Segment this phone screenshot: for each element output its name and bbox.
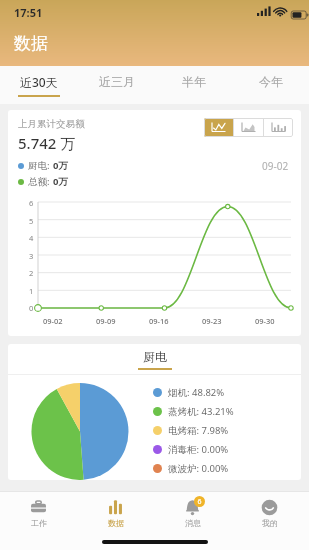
button[interactable]: 数据 xyxy=(77,492,154,534)
staticText: 消毒柜: 0.00% xyxy=(168,443,229,456)
staticText: 电烤箱: 7.98% xyxy=(168,424,229,437)
button[interactable]: 近30天 xyxy=(0,66,78,104)
staticText: 17:51 xyxy=(14,5,43,20)
staticText: 6 xyxy=(29,198,34,208)
staticText: 5.742 万 xyxy=(18,133,76,153)
staticText: 烟机: 48.82% xyxy=(168,386,225,399)
staticText: 5 xyxy=(29,216,34,226)
staticText: 0万 xyxy=(53,175,68,188)
staticText: 4 xyxy=(29,233,34,243)
staticText: 09-23 xyxy=(202,316,222,326)
staticText: 2 xyxy=(29,268,34,278)
staticText: 总额: xyxy=(28,175,50,188)
button[interactable]: 我的 xyxy=(231,492,308,534)
staticText: 今年 xyxy=(259,74,283,89)
staticText: 近三月 xyxy=(99,74,135,89)
button[interactable]: 6 xyxy=(154,492,231,534)
staticText: 0 xyxy=(29,303,34,313)
button[interactable]: 半年 xyxy=(155,66,232,104)
button[interactable]: Line chart xyxy=(204,118,233,137)
staticText: 3 xyxy=(29,251,34,261)
staticText: 厨电: xyxy=(28,159,50,172)
staticText: 厨电 xyxy=(143,349,167,364)
staticText: 09-02 xyxy=(262,159,289,173)
staticText: 消息 xyxy=(185,518,201,528)
staticText: 工作 xyxy=(31,518,47,528)
staticText: 09-16 xyxy=(149,316,169,326)
staticText: 蒸烤机: 43.21% xyxy=(168,405,234,418)
button[interactable]: Chart type xyxy=(264,118,293,137)
staticText: 我的 xyxy=(262,518,278,528)
staticText: 0万 xyxy=(53,159,68,172)
staticText: 微波炉: 0.00% xyxy=(168,462,229,475)
button[interactable]: 近三月 xyxy=(78,66,155,104)
staticText: 1 xyxy=(29,286,34,296)
button[interactable]: Chart type xyxy=(234,118,263,137)
staticText: 近30天 xyxy=(20,74,58,90)
staticText: 半年 xyxy=(182,74,206,89)
staticText: 6 xyxy=(197,497,202,507)
staticText: 09-09 xyxy=(96,316,116,326)
button[interactable]: 工作 xyxy=(0,492,77,534)
staticText: 09-02 xyxy=(43,316,63,326)
staticText: 上月累计交易额 xyxy=(18,118,85,130)
staticText: 数据 xyxy=(108,518,124,528)
staticText: 09-30 xyxy=(255,316,275,326)
staticText: 数据 xyxy=(14,33,48,54)
button[interactable]: 今年 xyxy=(232,66,309,104)
